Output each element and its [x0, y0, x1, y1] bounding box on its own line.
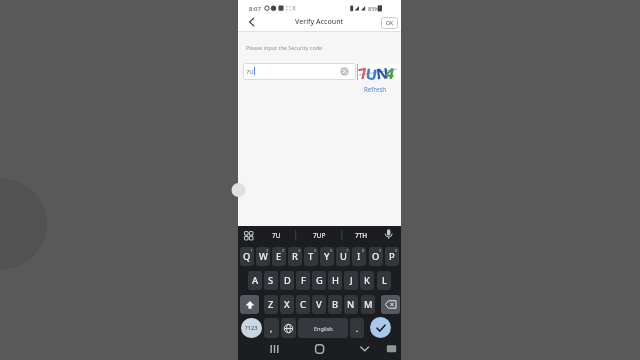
staticText: Y: [324, 250, 330, 263]
staticText: 8: [362, 248, 365, 253]
button[interactable]: I: [352, 247, 366, 266]
staticText: P: [389, 250, 395, 263]
button[interactable]: [244, 231, 254, 241]
staticText: U: [340, 250, 347, 263]
staticText: 1: [250, 248, 253, 253]
staticText: I: [357, 250, 361, 263]
staticText: V: [316, 298, 322, 311]
staticText: C: [300, 298, 306, 311]
button[interactable]: [370, 317, 391, 338]
button[interactable]: U: [336, 247, 350, 266]
button[interactable]: W: [256, 247, 270, 266]
button[interactable]: J: [344, 271, 358, 290]
button[interactable]: O: [369, 247, 383, 266]
button[interactable]: ,: [264, 318, 279, 338]
staticText: T: [308, 250, 314, 263]
staticText: S: [268, 274, 274, 287]
staticText: 6: [330, 248, 333, 253]
button[interactable]: S: [264, 271, 278, 290]
staticText: O: [372, 250, 380, 263]
staticText: N: [375, 62, 390, 80]
staticText: ,: [270, 323, 273, 334]
button[interactable]: C: [296, 295, 310, 314]
staticText: OK: [386, 20, 394, 27]
button[interactable]: 7: [357, 64, 400, 80]
staticText: 5: [314, 248, 317, 253]
staticText: X: [284, 298, 290, 311]
button[interactable]: [311, 341, 328, 358]
staticText: Verify Account: [295, 17, 344, 27]
staticText: M: [364, 298, 373, 311]
staticText: R: [292, 250, 298, 263]
staticText: H: [332, 274, 339, 287]
button[interactable]: [356, 341, 373, 358]
button[interactable]: D: [280, 271, 294, 290]
staticText: ?123: [245, 324, 258, 332]
button[interactable]: X: [280, 295, 294, 314]
button[interactable]: [247, 16, 257, 28]
staticText: K: [364, 274, 370, 287]
button[interactable]: 7U: [243, 63, 356, 80]
staticText: 2: [266, 248, 269, 253]
staticText: D: [284, 274, 291, 287]
button[interactable]: B: [328, 295, 342, 314]
staticText: U: [365, 63, 379, 81]
button[interactable]: [381, 295, 400, 314]
button[interactable]: [382, 341, 399, 358]
staticText: E: [276, 250, 282, 263]
button[interactable]: Refresh: [353, 85, 398, 93]
staticText: W: [259, 250, 268, 263]
staticText: G: [316, 274, 323, 287]
button[interactable]: T: [304, 247, 318, 266]
staticText: L: [382, 274, 387, 287]
staticText: N: [347, 298, 355, 311]
staticText: 7: [357, 62, 368, 80]
button[interactable]: R: [288, 247, 302, 266]
button[interactable]: OK: [381, 17, 398, 29]
staticText: 8:07: [249, 5, 261, 13]
staticText: 7TH: [355, 231, 368, 240]
button[interactable]: P: [385, 247, 399, 266]
button[interactable]: 7U: [262, 228, 290, 243]
staticText: Please input the Security code: [246, 44, 323, 51]
staticText: 7UP: [313, 231, 326, 240]
button[interactable]: .: [350, 318, 364, 338]
staticText: .: [356, 323, 359, 334]
staticText: 7U: [246, 68, 254, 76]
staticText: 9: [379, 248, 382, 253]
button[interactable]: 7TH: [347, 228, 375, 243]
button[interactable]: Y: [320, 247, 334, 266]
staticText: 7U: [272, 231, 281, 240]
button[interactable]: F: [296, 271, 310, 290]
staticText: 0: [395, 248, 398, 253]
button[interactable]: M: [361, 295, 375, 314]
staticText: Q: [243, 250, 251, 263]
button[interactable]: ?123: [241, 318, 262, 338]
button[interactable]: 7UP: [305, 228, 334, 243]
button[interactable]: Z: [264, 295, 278, 314]
button[interactable]: English: [298, 318, 348, 338]
button[interactable]: [266, 341, 283, 358]
button[interactable]: Q: [240, 247, 254, 266]
staticText: 4: [298, 248, 301, 253]
staticText: A: [252, 274, 259, 287]
staticText: Z: [268, 298, 274, 311]
staticText: Refresh: [364, 85, 387, 93]
button[interactable]: K: [360, 271, 374, 290]
button[interactable]: H: [328, 271, 342, 290]
button[interactable]: V: [312, 295, 326, 314]
button[interactable]: E: [272, 247, 286, 266]
button[interactable]: G: [312, 271, 326, 290]
button[interactable]: A: [248, 271, 262, 290]
staticText: 85%: [368, 5, 379, 12]
staticText: J: [350, 274, 353, 287]
button[interactable]: N: [344, 295, 358, 314]
staticText: 7: [346, 248, 349, 253]
button[interactable]: [240, 295, 259, 314]
staticText: 3: [282, 248, 285, 253]
button[interactable]: [281, 318, 296, 338]
button[interactable]: L: [377, 271, 391, 290]
staticText: English: [314, 325, 333, 332]
staticText: 4: [385, 62, 396, 80]
staticText: B: [332, 298, 339, 311]
